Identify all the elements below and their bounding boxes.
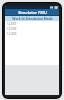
button[interactable]: Simulator FMU — [5, 9, 59, 16]
button[interactable]: 12.001 — [5, 21, 59, 26]
button[interactable]: 12.003 — [5, 31, 59, 36]
staticText: 12.001 — [7, 22, 17, 26]
button[interactable]: 12.002 — [5, 26, 59, 31]
staticText: 12.002 — [7, 27, 17, 31]
staticText: Work In Simulation Mode — [12, 17, 53, 21]
button[interactable]: Work In Simulation Mode — [5, 16, 59, 21]
staticText: 12.003 — [7, 32, 17, 36]
staticText: Simulator FMU — [18, 10, 47, 15]
